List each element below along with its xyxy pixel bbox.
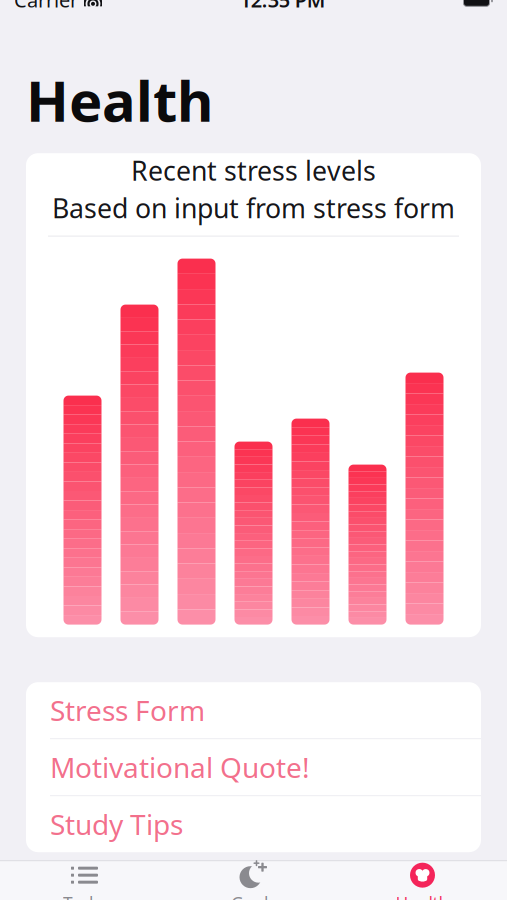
button[interactable]: Motivational Quote! xyxy=(26,739,481,795)
button[interactable]: Stress Form xyxy=(26,682,481,738)
button[interactable]: Study Tips xyxy=(26,796,481,852)
staticText: Recent stress levels xyxy=(131,153,376,188)
button[interactable]: Tasks xyxy=(0,861,169,900)
button[interactable]: Health xyxy=(338,861,507,900)
staticText: Health xyxy=(26,63,213,137)
staticText: Carrier xyxy=(14,0,78,13)
staticText: Health xyxy=(395,892,449,900)
staticText: Study Tips xyxy=(50,806,183,843)
staticText: 12:35 PM xyxy=(240,0,326,13)
staticText: Motivational Quote! xyxy=(50,749,310,786)
button[interactable]: Goals xyxy=(169,861,338,900)
staticText: Tasks xyxy=(63,892,106,900)
staticText: Goals xyxy=(231,892,276,900)
staticText: Stress Form xyxy=(50,692,205,729)
staticText: Based on input from stress form xyxy=(52,190,455,226)
